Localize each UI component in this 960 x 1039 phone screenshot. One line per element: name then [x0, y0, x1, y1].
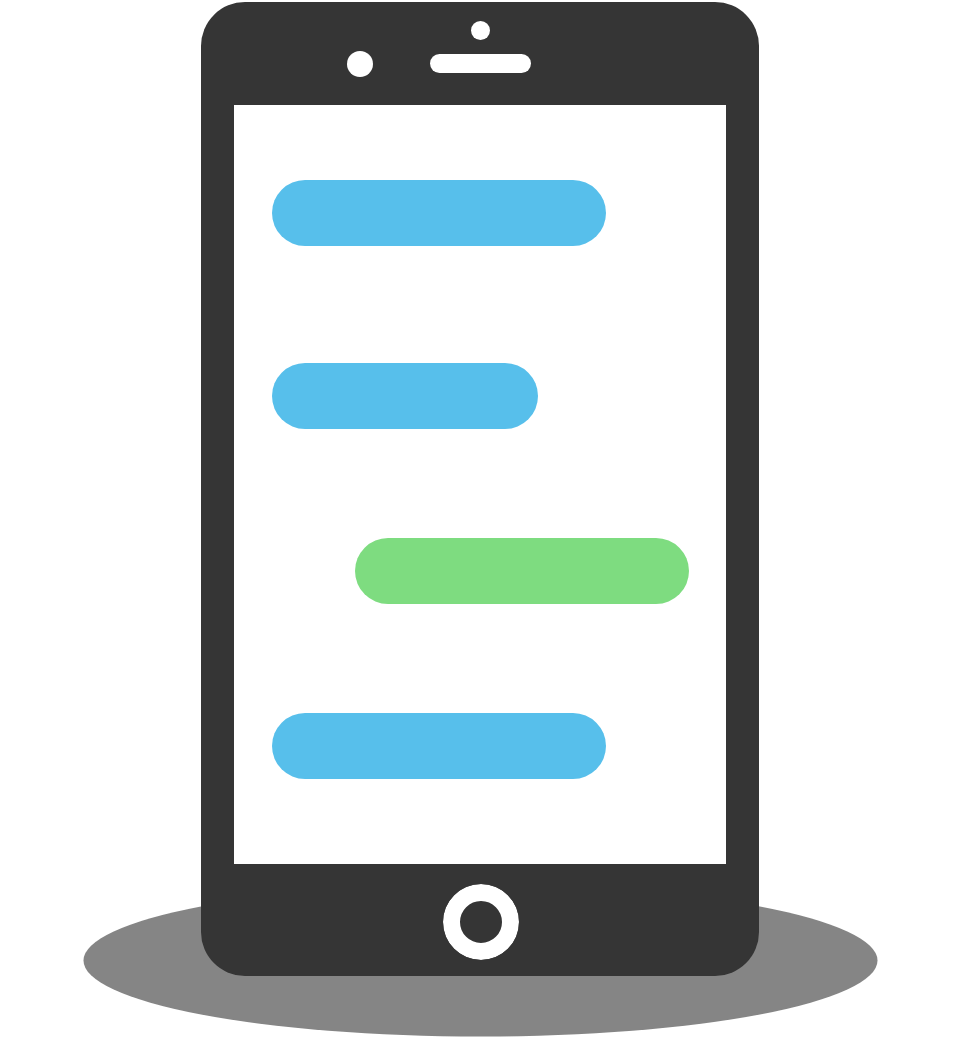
button[interactable]: Received message 2	[272, 363, 538, 429]
button[interactable]: Received message 3	[272, 713, 606, 779]
button[interactable]: Home	[443, 884, 519, 960]
button[interactable]: Sent message	[355, 538, 689, 604]
button[interactable]: Received message 1	[272, 180, 606, 246]
